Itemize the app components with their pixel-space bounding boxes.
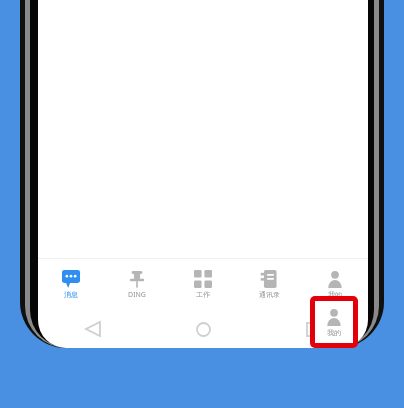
button[interactable]: 工作: [170, 270, 236, 299]
staticText: DING: [128, 290, 146, 300]
button[interactable]: 通讯录: [236, 270, 302, 299]
staticText: 通讯录: [259, 290, 280, 299]
button[interactable]: DING: [104, 270, 170, 300]
button[interactable]: 我的 tab highlighted: [310, 296, 358, 348]
button[interactable]: 我的: [302, 270, 368, 299]
button[interactable]: 消息: [38, 270, 104, 299]
button[interactable]: Back: [77, 313, 109, 345]
staticText: 我的: [328, 290, 342, 299]
button[interactable]: Home: [187, 313, 219, 345]
staticText: 消息: [64, 290, 78, 299]
button[interactable]: Recents: [297, 313, 329, 345]
staticText: 工作: [196, 290, 210, 299]
staticText: 我的: [327, 328, 341, 337]
